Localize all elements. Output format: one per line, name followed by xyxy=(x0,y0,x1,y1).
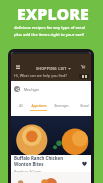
button[interactable] xyxy=(11,116,91,155)
staticText: Meal type xyxy=(24,87,40,91)
button[interactable]: Scan barcode xyxy=(79,74,89,79)
button[interactable]: All xyxy=(17,102,24,110)
staticText: Buffalo Ranch Chicken Wonton Bites xyxy=(14,155,80,167)
button[interactable]: Menu xyxy=(13,62,22,72)
staticText: Bread xyxy=(80,104,89,108)
button[interactable]: Beverages xyxy=(53,102,69,110)
staticText: delicious recipes for any type of meal p… xyxy=(14,25,86,38)
button[interactable]: Shopping cart xyxy=(78,62,87,72)
button[interactable]: Meal type xyxy=(14,86,40,92)
staticText: Appetizers xyxy=(31,104,47,108)
button[interactable]: Bread xyxy=(79,102,89,110)
staticText: Ready in 30 min xyxy=(14,169,41,172)
staticText: EXPLORE xyxy=(17,3,89,25)
button[interactable]: Save recipe xyxy=(80,159,89,168)
staticText: SHOPPING LIST xyxy=(36,66,67,71)
staticText: Hi, What can we help you find? xyxy=(14,73,67,78)
button[interactable]: Appetizers xyxy=(30,102,47,111)
button[interactable]: Hi, What can we help you find? xyxy=(14,73,67,78)
staticText: Beverages xyxy=(54,104,69,108)
staticText: All xyxy=(19,104,23,108)
button[interactable]: SHOPPING LIST xyxy=(36,66,71,71)
button[interactable] xyxy=(11,172,91,183)
